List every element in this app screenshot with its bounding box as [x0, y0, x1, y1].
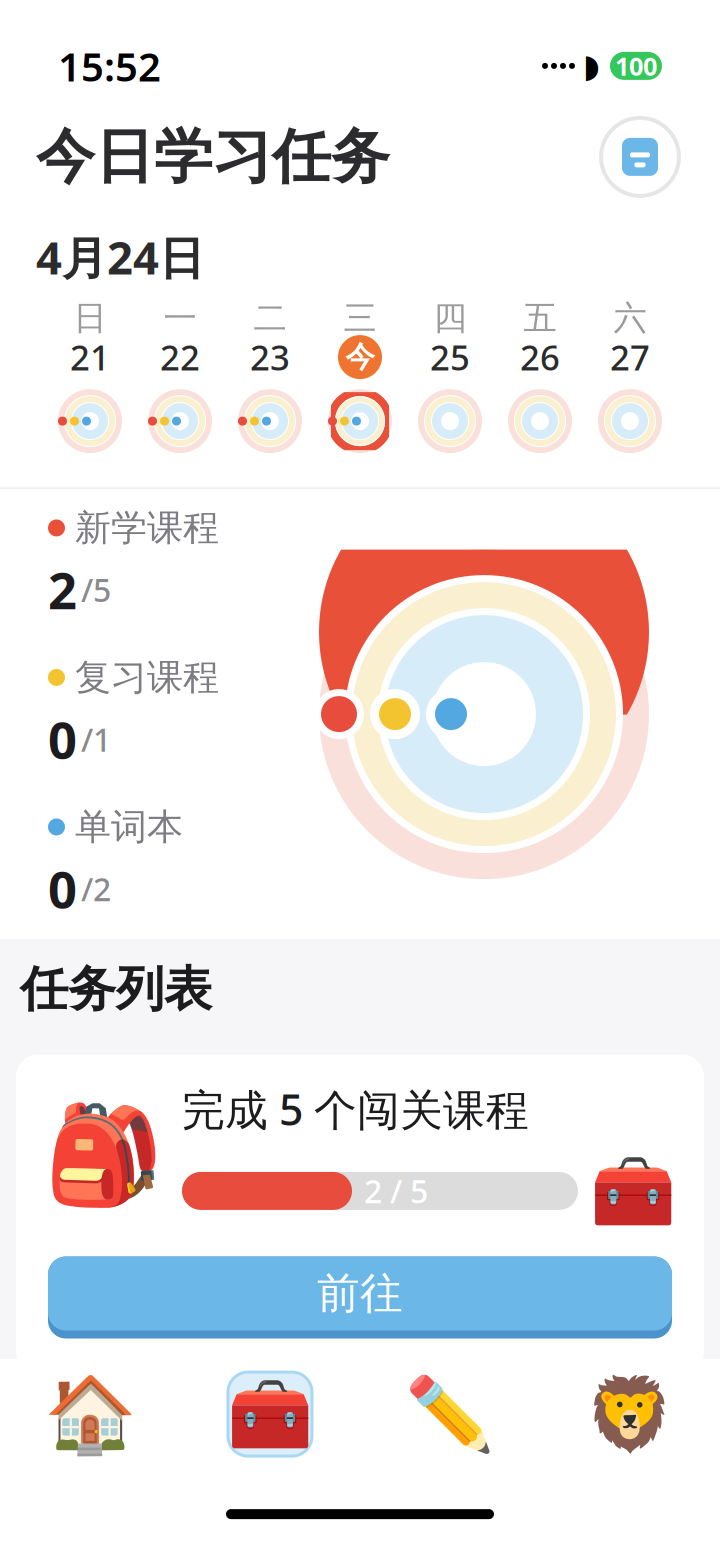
staticText: 四	[433, 298, 466, 338]
button[interactable]: 六	[585, 301, 675, 453]
staticText: 今	[345, 339, 374, 375]
staticText: 🧰	[590, 1151, 676, 1230]
button[interactable]: 三	[315, 301, 405, 453]
button[interactable]: 我的	[540, 1366, 720, 1462]
button[interactable]: 四	[405, 301, 495, 453]
staticText: 25	[430, 334, 470, 380]
button[interactable]: 首页	[0, 1366, 180, 1462]
staticText: 21	[70, 334, 110, 380]
staticText: 三	[343, 298, 376, 338]
staticText: 🧰	[227, 1374, 313, 1454]
staticText: 完成 5 个闯关课程	[182, 1081, 529, 1137]
button[interactable]: 日	[45, 301, 135, 453]
staticText: 100	[615, 49, 657, 83]
staticText: 23	[250, 334, 290, 380]
button[interactable]: 练习	[360, 1366, 540, 1462]
staticText: 27	[610, 334, 650, 380]
staticText: 🦁	[585, 1373, 675, 1455]
staticText: 0	[48, 706, 77, 773]
staticText: 🎒	[44, 1101, 164, 1210]
staticText: ◗	[583, 48, 600, 84]
staticText: 新学课程	[75, 506, 219, 550]
staticText: /5	[81, 568, 111, 611]
staticText: 4月24日	[36, 227, 204, 287]
staticText: 六	[613, 298, 646, 338]
staticText: 任务列表	[20, 960, 212, 1019]
staticText: 0	[48, 855, 77, 922]
staticText: 日	[73, 298, 106, 338]
button[interactable]: 五	[495, 301, 585, 453]
staticText: 五	[523, 298, 556, 338]
staticText: /2	[81, 867, 111, 910]
button[interactable]: 二	[225, 301, 315, 453]
staticText: 复习课程	[75, 655, 219, 699]
staticText: 前往	[317, 1267, 403, 1320]
staticText: ✏️	[405, 1373, 495, 1455]
staticText: 2	[48, 556, 77, 623]
staticText: 22	[160, 334, 200, 380]
staticText: 二	[253, 298, 286, 338]
button[interactable]: 一	[135, 301, 225, 453]
button[interactable]: 前往	[16, 1256, 704, 1338]
staticText: 🏠	[43, 1371, 136, 1457]
staticText: 2 / 5	[364, 1170, 428, 1212]
staticText: 单词本	[75, 805, 183, 849]
staticText: 今日学习任务	[36, 121, 390, 193]
staticText: /1	[81, 718, 111, 760]
staticText: 26	[520, 334, 560, 380]
button[interactable]: 任务	[180, 1366, 360, 1462]
button[interactable]: 学习日历	[596, 113, 684, 201]
staticText: 15:52	[58, 39, 161, 92]
staticText: 一	[163, 298, 196, 338]
